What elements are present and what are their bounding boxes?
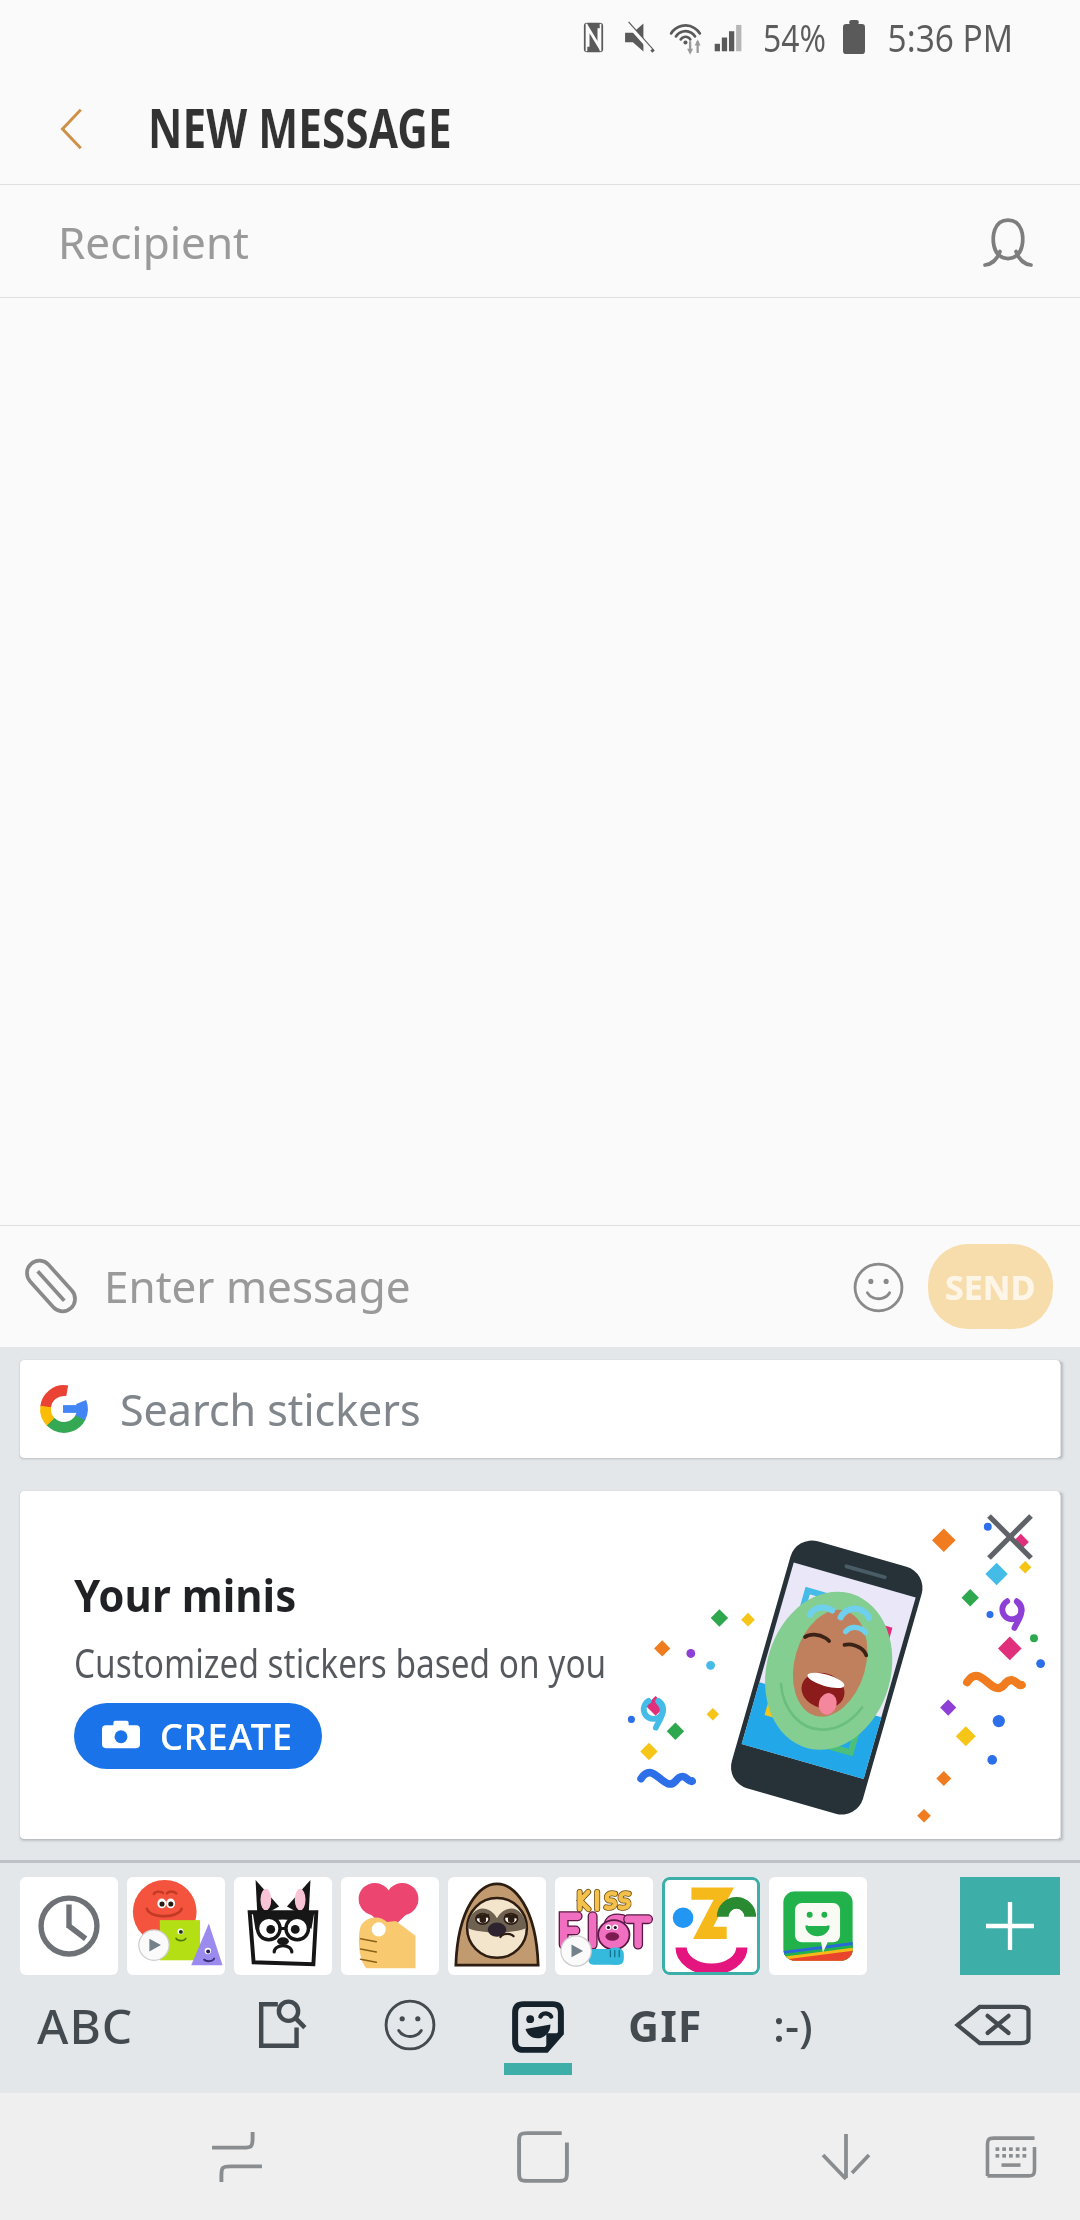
button[interactable]: Add stickers (960, 1877, 1060, 1975)
staticText: Your minis (74, 1564, 296, 1625)
button[interactable]: :-) (733, 1975, 853, 2075)
staticText: NEW MESSAGE (148, 91, 452, 163)
button[interactable]: Back (34, 92, 114, 172)
button[interactable]: Sticker (555, 1877, 653, 1975)
button[interactable]: Home (493, 2107, 593, 2207)
button[interactable]: Sticker selected (662, 1877, 760, 1975)
button[interactable]: Search stickers (232, 1975, 332, 2075)
button[interactable]: Emoji (360, 1975, 460, 2075)
button[interactable]: SEND (928, 1244, 1053, 1329)
staticText: CREATE (160, 1712, 294, 1761)
button[interactable]: Sticker (234, 1877, 332, 1975)
button[interactable]: Backspace (933, 1975, 1053, 2075)
button[interactable]: Attach (7, 1242, 95, 1330)
staticText: SEND (945, 1264, 1036, 1310)
button[interactable]: Close (974, 1501, 1046, 1573)
staticText: Recipient (58, 212, 249, 272)
button[interactable]: Sticker (769, 1877, 867, 1975)
button[interactable]: ABC (0, 1975, 170, 2075)
staticText: GIF (628, 1996, 703, 2055)
button[interactable]: Hide keyboard (796, 2107, 896, 2207)
button[interactable]: Emoji (840, 1249, 916, 1325)
button[interactable]: Stickers (488, 1975, 588, 2093)
button[interactable]: Add recipient (966, 200, 1050, 284)
button[interactable]: Search stickers (20, 1360, 1060, 1458)
button[interactable]: Sticker (448, 1877, 546, 1975)
staticText: Customized stickers based on you (74, 1635, 607, 1689)
staticText: Enter message (104, 1256, 411, 1316)
button[interactable]: Keyboard (961, 2107, 1061, 2207)
button[interactable]: Sticker (127, 1877, 225, 1975)
button[interactable]: GIF (605, 1975, 725, 2075)
button[interactable]: Sticker (20, 1877, 118, 1975)
staticText: ABC (37, 1993, 134, 2058)
staticText: 5:36 PM (888, 11, 1013, 63)
staticText: Search stickers (120, 1380, 421, 1439)
staticText: 54% (763, 11, 827, 63)
staticText: :-) (773, 1995, 813, 2055)
button[interactable]: CREATE (74, 1703, 322, 1769)
button[interactable]: Sticker (341, 1877, 439, 1975)
button[interactable]: Recents (187, 2107, 287, 2207)
